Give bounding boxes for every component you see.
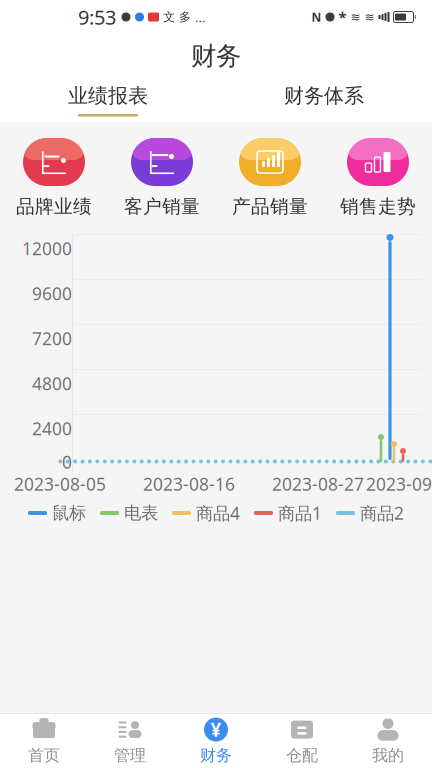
staticText: 业绩报表 bbox=[68, 83, 148, 108]
staticText: 产品销量 bbox=[232, 195, 308, 218]
staticText: 12000 bbox=[22, 237, 72, 260]
button[interactable]: 产品销量 bbox=[216, 138, 324, 218]
staticText: 客户销量 bbox=[124, 195, 200, 218]
staticText: ≋ bbox=[364, 10, 374, 24]
button[interactable]: 财务体系 bbox=[216, 78, 432, 122]
staticText: 商品4 bbox=[196, 501, 240, 524]
staticText: ¥ bbox=[210, 717, 221, 742]
button[interactable]: 业绩报表 bbox=[0, 78, 216, 122]
staticText: 2023-08-27 bbox=[272, 472, 364, 495]
staticText: 4800 bbox=[32, 372, 72, 395]
staticText: 财务 bbox=[191, 40, 241, 71]
staticText: 2400 bbox=[32, 417, 72, 440]
button[interactable]: 品牌业绩 bbox=[0, 138, 108, 218]
staticText: 管理 bbox=[114, 746, 146, 765]
staticText: 首页 bbox=[28, 746, 60, 765]
staticText: 2023-09 bbox=[366, 472, 432, 495]
staticText: 商品2 bbox=[360, 501, 404, 524]
staticText: * bbox=[338, 7, 346, 27]
staticText: 品牌业绩 bbox=[16, 195, 92, 218]
button[interactable]: ¥ bbox=[173, 714, 259, 768]
staticText: 我的 bbox=[372, 746, 404, 765]
staticText: 2023-08-05 bbox=[14, 472, 106, 495]
staticText: … bbox=[195, 8, 206, 26]
staticText: 电表 bbox=[124, 502, 158, 524]
staticText: 鼠标 bbox=[52, 502, 86, 524]
button[interactable]: 仓配 bbox=[259, 714, 345, 768]
staticText: 商品1 bbox=[278, 501, 322, 524]
button[interactable]: 管理 bbox=[87, 714, 173, 768]
button[interactable]: 首页 bbox=[1, 714, 87, 768]
button[interactable]: 我的 bbox=[345, 714, 431, 768]
staticText: 7200 bbox=[32, 327, 72, 350]
staticText: 财务 bbox=[200, 746, 232, 765]
staticText: 文 bbox=[163, 10, 175, 24]
staticText: 9:53 bbox=[78, 4, 116, 30]
button[interactable]: 销售走势 bbox=[324, 138, 432, 218]
staticText: 9600 bbox=[32, 282, 72, 305]
staticText: 销售走势 bbox=[340, 195, 416, 218]
staticText: 仓配 bbox=[286, 746, 318, 765]
staticText: 0 bbox=[62, 450, 72, 473]
staticText: ≋ bbox=[350, 10, 360, 24]
staticText: 财务体系 bbox=[284, 83, 364, 108]
staticText: 多 bbox=[179, 10, 191, 24]
staticText: 2023-08-16 bbox=[143, 472, 235, 495]
staticText: N bbox=[311, 9, 321, 25]
button[interactable]: 客户销量 bbox=[108, 138, 216, 218]
